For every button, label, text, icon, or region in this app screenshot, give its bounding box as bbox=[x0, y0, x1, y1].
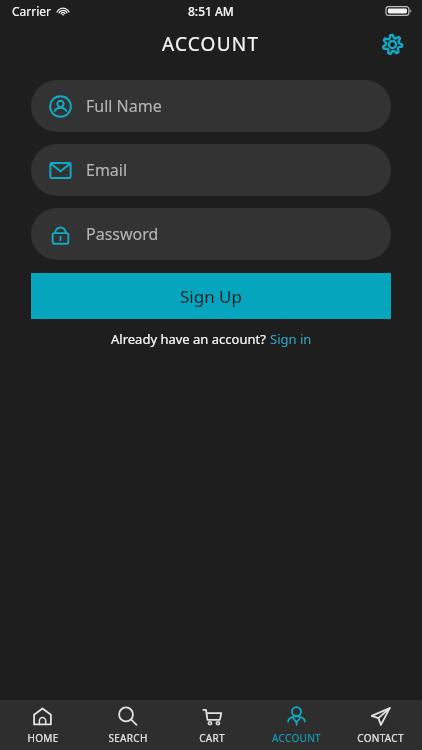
staticText: 8:51 AM bbox=[188, 3, 234, 19]
staticText: ACCOUNT bbox=[162, 31, 260, 57]
staticText: CONTACT bbox=[357, 731, 404, 745]
button[interactable]: Email bbox=[31, 144, 391, 196]
button[interactable]: CART bbox=[170, 700, 254, 750]
staticText: Full Name bbox=[86, 95, 162, 117]
staticText: Already have an account? bbox=[111, 330, 270, 348]
staticText: HOME bbox=[27, 731, 59, 745]
button[interactable]: CONTACT bbox=[338, 700, 422, 750]
button[interactable]: Sign in bbox=[270, 330, 312, 348]
button[interactable]: Password bbox=[31, 208, 391, 260]
staticText: Sign Up bbox=[180, 285, 242, 308]
staticText: CART bbox=[199, 731, 225, 745]
button[interactable]: HOME bbox=[0, 700, 85, 750]
button[interactable]: Full Name bbox=[31, 80, 391, 132]
button[interactable]: Sign Up bbox=[31, 273, 391, 319]
button[interactable]: ACCOUNT bbox=[254, 700, 338, 750]
staticText: Email bbox=[86, 159, 128, 181]
staticText: SEARCH bbox=[108, 731, 148, 745]
button[interactable]: SEARCH bbox=[85, 700, 170, 750]
staticText: Password bbox=[86, 223, 159, 245]
staticText: ACCOUNT bbox=[272, 731, 321, 745]
staticText: Sign in bbox=[270, 330, 312, 348]
staticText: Carrier bbox=[12, 3, 52, 19]
button[interactable]: Settings bbox=[374, 26, 410, 62]
